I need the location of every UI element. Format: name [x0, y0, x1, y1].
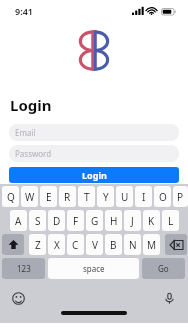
button[interactable]: H: [105, 210, 122, 231]
button[interactable]: O: [154, 186, 171, 207]
button[interactable]: S: [29, 210, 46, 231]
staticText: F: [73, 214, 79, 228]
button[interactable]: J: [124, 210, 141, 231]
button[interactable]: Email: [9, 124, 179, 141]
staticText: Email: [15, 127, 36, 138]
button[interactable]: K: [143, 210, 160, 231]
button[interactable]: V: [86, 234, 103, 255]
button[interactable]: Shift: [2, 234, 24, 255]
button[interactable]: G: [86, 210, 103, 231]
button[interactable]: Password: [9, 145, 179, 162]
staticText: G: [91, 214, 99, 228]
button[interactable]: I: [135, 186, 152, 207]
button[interactable]: Y: [97, 186, 114, 207]
button[interactable]: W: [21, 186, 38, 207]
staticText: B: [110, 238, 117, 252]
staticText: U: [121, 190, 129, 204]
staticText: V: [92, 238, 98, 252]
button[interactable]: 123: [2, 258, 45, 279]
staticText: O: [159, 190, 167, 204]
staticText: I: [142, 190, 146, 204]
staticText: 9:41: [15, 5, 33, 17]
staticText: A: [15, 214, 22, 228]
staticText: J: [131, 214, 134, 228]
staticText: Y: [103, 190, 109, 204]
button[interactable]: C: [67, 234, 84, 255]
staticText: Login: [82, 169, 107, 181]
button[interactable]: P: [173, 186, 188, 207]
staticText: H: [110, 214, 118, 228]
button[interactable]: Backspace: [165, 234, 187, 255]
staticText: K: [148, 214, 155, 228]
staticText: D: [53, 214, 61, 228]
button[interactable]: Q: [2, 186, 19, 207]
staticText: Z: [35, 238, 41, 252]
button[interactable]: Dictation: [162, 291, 177, 306]
button[interactable]: A: [10, 210, 27, 231]
staticText: Go: [158, 263, 169, 274]
staticText: S: [35, 214, 41, 228]
staticText: 123: [17, 263, 31, 274]
staticText: Password: [15, 148, 52, 159]
staticText: L: [168, 214, 174, 228]
button[interactable]: D: [48, 210, 65, 231]
staticText: N: [129, 238, 137, 252]
staticText: Q: [7, 190, 15, 204]
button[interactable]: M: [143, 234, 160, 255]
staticText: space: [83, 263, 105, 274]
button[interactable]: X: [48, 234, 65, 255]
button[interactable]: E: [40, 186, 57, 207]
staticText: C: [72, 238, 79, 252]
button[interactable]: Login: [9, 167, 179, 183]
staticText: E: [46, 190, 52, 204]
button[interactable]: Z: [29, 234, 46, 255]
button[interactable]: B: [105, 234, 122, 255]
button[interactable]: F: [67, 210, 84, 231]
button[interactable]: L: [162, 210, 179, 231]
button[interactable]: Emoji keyboard: [11, 291, 26, 306]
staticText: X: [54, 238, 60, 252]
staticText: W: [25, 190, 35, 204]
button[interactable]: Go: [142, 258, 185, 279]
button[interactable]: U: [116, 186, 133, 207]
staticText: M: [147, 238, 157, 252]
button[interactable]: N: [124, 234, 141, 255]
staticText: R: [64, 190, 71, 204]
staticText: P: [177, 190, 184, 204]
button[interactable]: R: [59, 186, 76, 207]
button[interactable]: space: [48, 258, 139, 279]
staticText: T: [84, 190, 90, 204]
button[interactable]: T: [78, 186, 95, 207]
staticText: Login: [10, 95, 52, 115]
